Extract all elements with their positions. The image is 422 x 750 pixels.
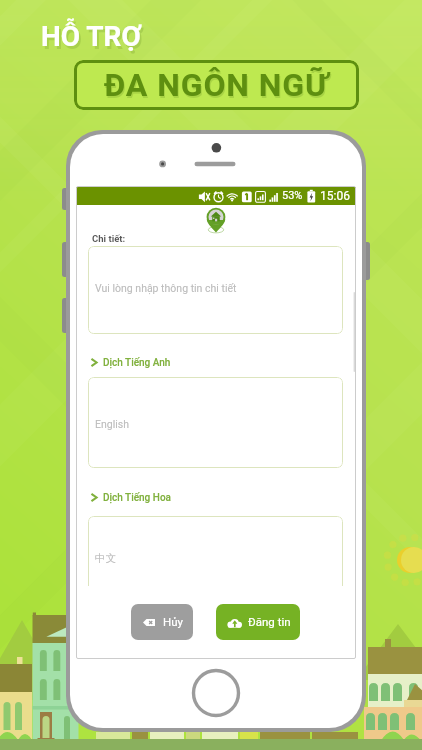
staticText: Chi tiết: (92, 233, 126, 244)
staticText: 15:06 (320, 189, 350, 203)
staticText: HỖ TRỢ (41, 20, 142, 53)
button[interactable]: Vui lòng nhập thông tin chi tiết (88, 246, 343, 334)
staticText: Dịch Tiếng Anh (98, 357, 171, 369)
button[interactable]: Dịch Tiếng Anh (90, 356, 171, 369)
staticText: 53% (282, 189, 303, 202)
staticText: Hủy (163, 615, 183, 628)
staticText: Vui lòng nhập thông tin chi tiết (95, 282, 237, 294)
button[interactable]: 中文 (88, 516, 343, 611)
staticText: 中文 (95, 552, 116, 565)
staticText: English (95, 418, 129, 430)
button[interactable]: Dịch Tiếng Hoa (90, 491, 171, 504)
staticText: HỖ TRỢ (43, 23, 144, 56)
staticText: ĐA NGÔN NGỮ (105, 68, 330, 106)
button[interactable]: Hủy (131, 604, 193, 640)
staticText: ĐA NGÔN NGỮ (104, 66, 329, 104)
button[interactable]: Đăng tin (216, 604, 300, 640)
button[interactable]: English (88, 377, 343, 468)
button[interactable]: ĐA NGÔN NGỮ (74, 60, 359, 110)
staticText: Dịch Tiếng Hoa (98, 492, 171, 504)
staticText: Đăng tin (248, 615, 291, 628)
